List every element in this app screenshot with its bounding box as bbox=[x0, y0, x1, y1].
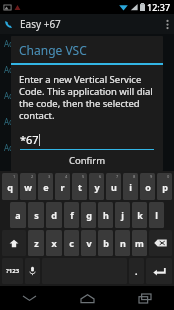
button[interactable]: p bbox=[157, 173, 172, 200]
staticText: a bbox=[15, 209, 21, 221]
staticText: 0 bbox=[167, 174, 170, 179]
staticText: y bbox=[94, 181, 100, 193]
staticText: Confirm bbox=[69, 154, 106, 167]
staticText: . bbox=[135, 265, 138, 277]
staticText: z bbox=[34, 237, 39, 249]
button[interactable]: Home bbox=[58, 286, 116, 310]
staticText: c bbox=[69, 237, 74, 249]
staticText: i bbox=[129, 181, 132, 193]
staticText: n bbox=[120, 237, 126, 249]
button[interactable]: m bbox=[132, 230, 147, 256]
staticText: Add bbox=[4, 142, 19, 153]
staticText: p bbox=[162, 181, 168, 193]
staticText: s bbox=[34, 209, 39, 221]
button[interactable]: d bbox=[46, 202, 62, 228]
staticText: k bbox=[137, 209, 143, 221]
staticText: 6 bbox=[99, 174, 102, 179]
staticText: t bbox=[78, 181, 82, 193]
button[interactable]: k bbox=[132, 202, 147, 228]
staticText: v bbox=[86, 237, 92, 249]
button[interactable]: e bbox=[38, 173, 53, 200]
button[interactable]: Delete bbox=[149, 230, 172, 256]
button[interactable]: z bbox=[28, 230, 44, 256]
staticText: e bbox=[43, 181, 49, 193]
staticText: r bbox=[60, 181, 65, 193]
staticText: x bbox=[51, 237, 57, 249]
button[interactable]: t bbox=[72, 173, 87, 200]
staticText: d bbox=[51, 209, 57, 221]
button[interactable]: More options bbox=[160, 14, 174, 34]
button[interactable]: n bbox=[115, 230, 130, 256]
staticText: Add bbox=[4, 64, 19, 75]
staticText: 2 bbox=[31, 174, 34, 179]
staticText: Change VSC bbox=[19, 42, 87, 58]
button[interactable]: Voice input bbox=[25, 258, 40, 284]
button[interactable]: Recent apps bbox=[116, 286, 174, 310]
button[interactable]: x bbox=[46, 230, 62, 256]
button[interactable]: o bbox=[140, 173, 155, 200]
staticText: 8 bbox=[133, 174, 136, 179]
staticText: Add bbox=[4, 90, 19, 101]
staticText: l bbox=[155, 209, 158, 221]
staticText: ?123 bbox=[6, 267, 20, 275]
button[interactable]: b bbox=[98, 230, 113, 256]
button[interactable]: Hide keyboard bbox=[0, 286, 58, 310]
staticText: 3 bbox=[48, 174, 51, 179]
button[interactable]: h bbox=[98, 202, 113, 228]
staticText: w bbox=[24, 181, 32, 193]
button[interactable]: u bbox=[106, 173, 121, 200]
button[interactable]: w bbox=[20, 173, 36, 200]
button[interactable]: Enter bbox=[146, 258, 172, 284]
button[interactable]: c bbox=[64, 230, 79, 256]
button[interactable]: Shift bbox=[2, 230, 26, 256]
button[interactable]: l bbox=[149, 202, 164, 228]
staticText: 9 bbox=[150, 174, 153, 179]
staticText: q bbox=[7, 181, 13, 193]
button[interactable]: Confirm bbox=[11, 153, 163, 171]
staticText: f bbox=[70, 209, 74, 221]
button[interactable]: y bbox=[89, 173, 104, 200]
staticText: Easy +67 bbox=[20, 17, 61, 31]
staticText: 12:37 bbox=[147, 1, 171, 13]
button[interactable]: f bbox=[64, 202, 79, 228]
staticText: 1 bbox=[13, 174, 16, 179]
staticText: *67 bbox=[20, 132, 39, 147]
button[interactable]: g bbox=[81, 202, 96, 228]
staticText: Enter a new Vertical Service Code. This … bbox=[19, 73, 155, 122]
button[interactable]: v bbox=[81, 230, 96, 256]
staticText: h bbox=[103, 209, 109, 221]
staticText: 5 bbox=[82, 174, 85, 179]
button[interactable]: a bbox=[10, 202, 26, 228]
staticText: 7 bbox=[116, 174, 119, 179]
staticText: b bbox=[103, 237, 109, 249]
button[interactable]: i bbox=[123, 173, 138, 200]
button[interactable]: Symbols bbox=[2, 258, 23, 284]
staticText: o bbox=[145, 181, 151, 193]
staticText: 4 bbox=[65, 174, 68, 179]
button[interactable]: s bbox=[28, 202, 44, 228]
staticText: Add bbox=[4, 116, 19, 127]
staticText: g bbox=[86, 209, 92, 221]
staticText: m bbox=[135, 237, 144, 249]
button[interactable]: q bbox=[2, 173, 18, 200]
button[interactable]: Period bbox=[129, 258, 144, 284]
staticText: Add bbox=[4, 38, 19, 49]
button[interactable]: r bbox=[55, 173, 70, 200]
button[interactable]: j bbox=[115, 202, 130, 228]
staticText: u bbox=[111, 181, 117, 193]
staticText: j bbox=[121, 209, 124, 221]
